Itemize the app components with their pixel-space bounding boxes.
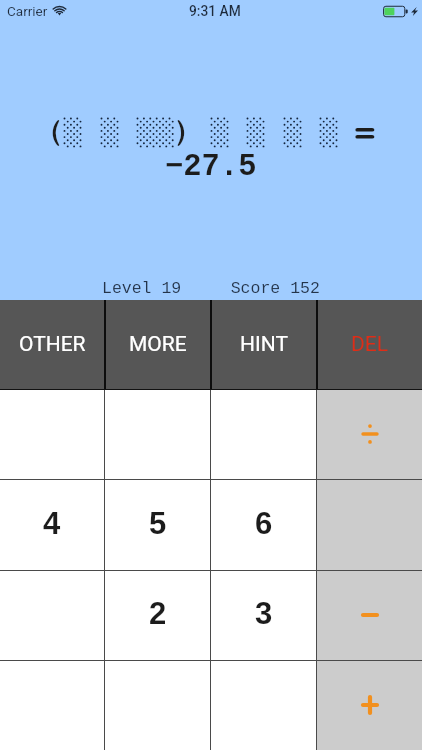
button[interactable]: 5 bbox=[105, 480, 210, 570]
staticText: DEL bbox=[351, 332, 389, 357]
button[interactable]: Minus bbox=[317, 571, 422, 660]
button[interactable]: HINT bbox=[212, 300, 316, 389]
button[interactable]: MORE bbox=[106, 300, 210, 389]
button[interactable]: Divide bbox=[317, 390, 422, 479]
button[interactable]: DEL bbox=[318, 300, 422, 389]
staticText: 2 bbox=[149, 596, 167, 631]
staticText: 9:31 AM bbox=[189, 3, 241, 19]
staticText: 6 bbox=[255, 506, 273, 541]
staticText: ( bbox=[46, 111, 66, 149]
staticText: ) bbox=[171, 111, 191, 149]
staticText: 5 bbox=[149, 506, 167, 541]
button[interactable]: Plus bbox=[317, 661, 422, 750]
staticText: = bbox=[354, 112, 376, 155]
button[interactable]: 3 bbox=[211, 571, 316, 660]
staticText: −27.5 bbox=[165, 150, 257, 185]
button[interactable]: 4 bbox=[0, 480, 104, 570]
button[interactable]: 2 bbox=[105, 571, 210, 660]
staticText: Level 19 Score 152 bbox=[102, 279, 320, 295]
button[interactable]: 6 bbox=[211, 480, 316, 570]
staticText: HINT bbox=[240, 332, 288, 357]
staticText: MORE bbox=[129, 332, 187, 357]
staticText: 4 bbox=[43, 506, 61, 541]
staticText: 3 bbox=[255, 596, 273, 631]
staticText: Carrier bbox=[7, 3, 48, 19]
button[interactable]: OTHER bbox=[0, 300, 104, 389]
staticText: OTHER bbox=[19, 332, 86, 357]
